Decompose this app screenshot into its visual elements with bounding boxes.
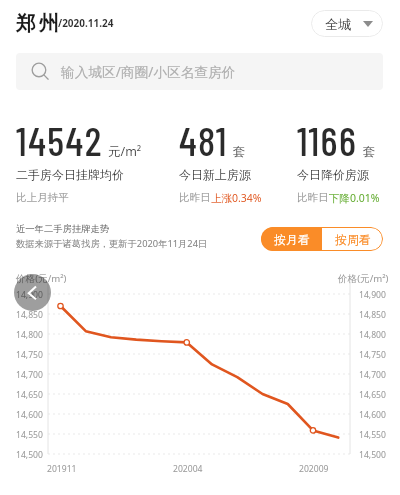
- staticText: 14,500: [16, 449, 43, 461]
- staticText: 14,550: [359, 429, 386, 441]
- staticText: 数据来源于诸葛找房，更新于2020年11月24日: [16, 237, 208, 250]
- staticText: 14,800: [16, 329, 43, 341]
- staticText: 按月看: [274, 232, 310, 247]
- staticText: 价格(元/m²): [16, 272, 67, 285]
- staticText: 14,750: [16, 349, 43, 361]
- staticText: 价格(元/m²): [338, 272, 389, 285]
- staticText: 202004: [173, 463, 203, 475]
- staticText: 二手房今日挂牌均价: [16, 167, 124, 182]
- staticText: 14,850: [359, 309, 386, 321]
- button[interactable]: 按月看: [261, 227, 322, 251]
- staticText: 按周看: [335, 232, 371, 247]
- staticText: 今日新上房源: [179, 167, 251, 182]
- staticText: 元/m²: [108, 143, 142, 160]
- staticText: 481: [179, 116, 228, 164]
- staticText: 近一年二手房挂牌走势: [16, 223, 109, 235]
- button[interactable]: 全城: [311, 10, 383, 37]
- staticText: 14,600: [16, 409, 43, 421]
- staticText: 套: [363, 144, 376, 160]
- button[interactable]: 输入城区/商圈/小区名查房价: [16, 53, 383, 90]
- staticText: 14,900: [359, 289, 386, 301]
- staticText: 全城: [325, 16, 351, 32]
- staticText: 套: [233, 144, 246, 160]
- button[interactable]: 按周看: [322, 227, 383, 251]
- staticText: 202009: [299, 463, 329, 475]
- staticText: 14,650: [359, 389, 386, 401]
- staticText: 上涨0.34%: [211, 191, 262, 205]
- staticText: 14,500: [359, 449, 386, 461]
- staticText: 郑州: [16, 11, 62, 36]
- staticText: 今日降价房源: [297, 167, 369, 182]
- staticText: 14,700: [16, 369, 43, 381]
- staticText: 14542: [16, 116, 103, 164]
- staticText: 201911: [47, 463, 77, 475]
- staticText: 14,900: [16, 289, 43, 301]
- staticText: 比上月持平: [16, 191, 69, 204]
- staticText: 14,750: [359, 349, 386, 361]
- staticText: 1166: [297, 116, 358, 164]
- staticText: 输入城区/商圈/小区名查房价: [61, 62, 236, 81]
- staticText: 14,700: [359, 369, 386, 381]
- staticText: 比昨日: [179, 191, 211, 204]
- staticText: 14,550: [16, 429, 43, 441]
- staticText: 比昨日: [297, 191, 329, 204]
- staticText: 14,650: [16, 389, 43, 401]
- staticText: 下降0.01%: [329, 191, 380, 205]
- button[interactable]: 返回: [14, 274, 51, 311]
- staticText: 14,600: [359, 409, 386, 421]
- staticText: /2020.11.24: [58, 16, 114, 30]
- staticText: 14,800: [359, 329, 386, 341]
- staticText: 14,850: [16, 309, 43, 321]
